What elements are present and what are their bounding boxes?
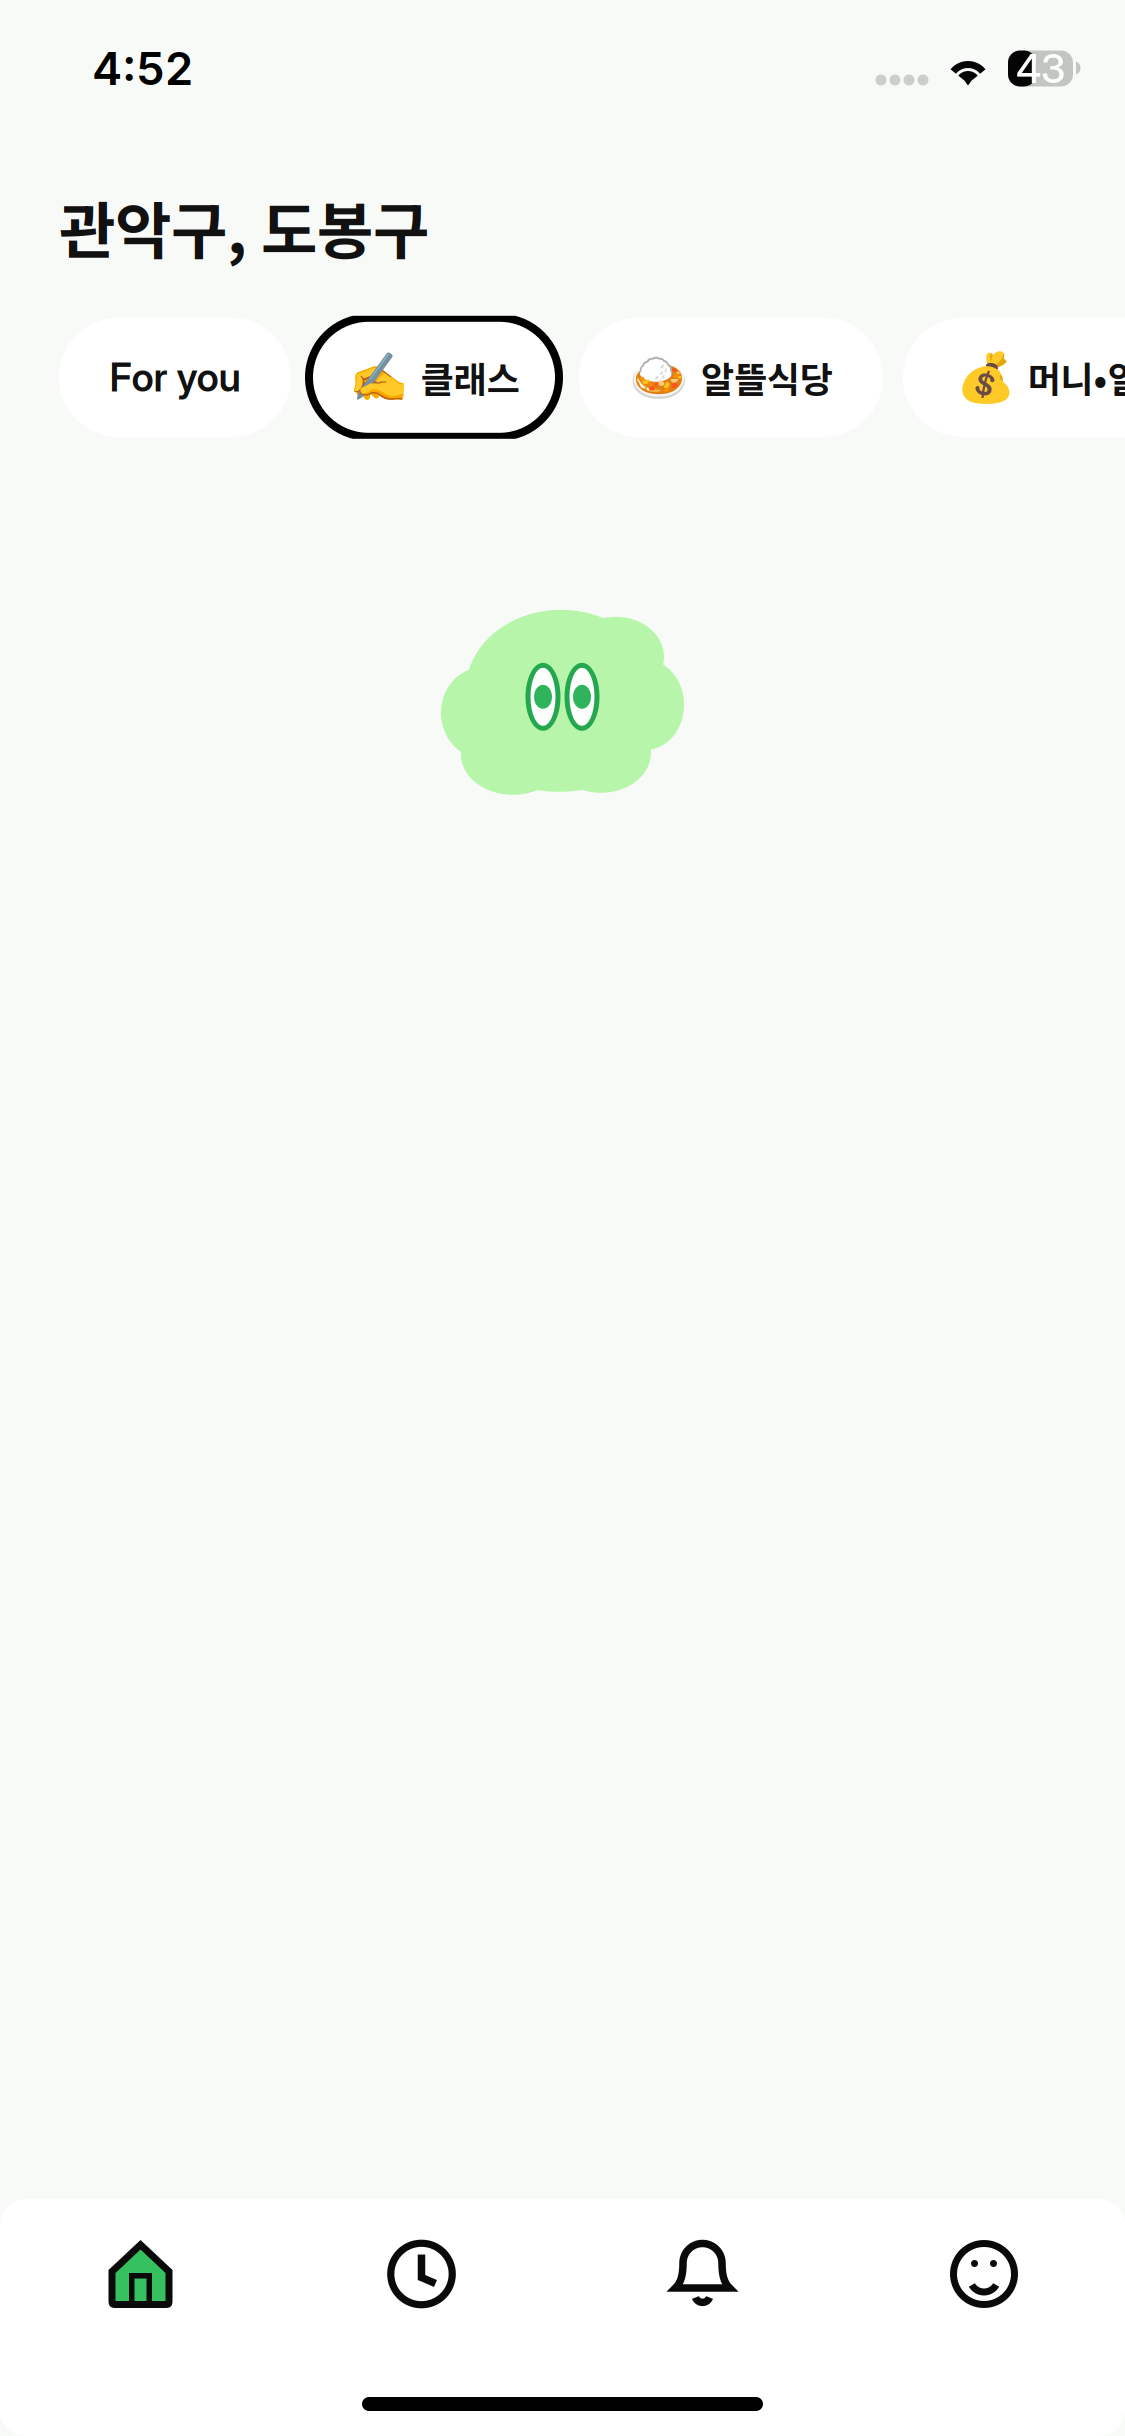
button[interactable]: Recent [281,2237,562,2311]
button[interactable]: For you [59,318,291,437]
staticText: ✍️ [348,349,408,405]
staticText: 43 [1016,44,1065,93]
staticText: 알뜰식당 [701,351,833,403]
button[interactable]: ✍️ [309,318,559,437]
staticText: 💰 [955,349,1015,405]
staticText: 머니•일 [1027,351,1125,403]
button[interactable]: Notifications [562,2237,843,2311]
staticText: For you [109,354,240,401]
staticText: 🍛 [629,349,689,405]
button[interactable]: Home [0,2237,281,2311]
staticText: 4:52 [92,41,193,96]
button[interactable]: 🍛 [579,318,883,437]
staticText: 클래스 [420,351,519,403]
button[interactable]: My Karrot [843,2237,1125,2311]
button[interactable]: 💰 [903,318,1125,437]
staticText: 관악구, 도봉구 [59,182,429,271]
